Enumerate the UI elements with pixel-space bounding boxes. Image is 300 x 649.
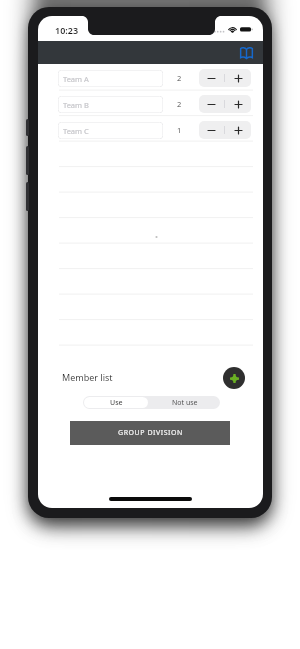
staticText: Team A (63, 74, 89, 84)
button[interactable]: Decrease (199, 95, 224, 113)
button[interactable]: Decrease (199, 121, 224, 139)
button[interactable]: Not use (149, 396, 220, 409)
button[interactable]: Add member (223, 367, 245, 389)
button[interactable]: Team B (58, 96, 163, 113)
staticText: Member list (62, 371, 113, 383)
button[interactable]: Increase (225, 69, 251, 87)
staticText: 1 (177, 125, 182, 135)
staticText: Not use (172, 398, 198, 408)
button[interactable]: GROUP DIVISION (70, 421, 230, 445)
staticText: GROUP DIVISION (118, 428, 183, 438)
button[interactable]: Use (84, 397, 148, 408)
staticText: 10:23 (55, 24, 79, 36)
button[interactable]: Manual (235, 42, 257, 64)
staticText: 2 (177, 99, 182, 109)
staticText: Team B (63, 100, 89, 110)
staticText: 2 (177, 73, 182, 83)
button[interactable]: Team C (58, 122, 163, 139)
button[interactable]: Decrease (199, 69, 224, 87)
button[interactable]: Team A (58, 70, 163, 87)
staticText: Team C (63, 126, 89, 136)
button[interactable]: Increase (225, 121, 251, 139)
staticText: Use (110, 398, 123, 408)
button[interactable]: Increase (225, 95, 251, 113)
